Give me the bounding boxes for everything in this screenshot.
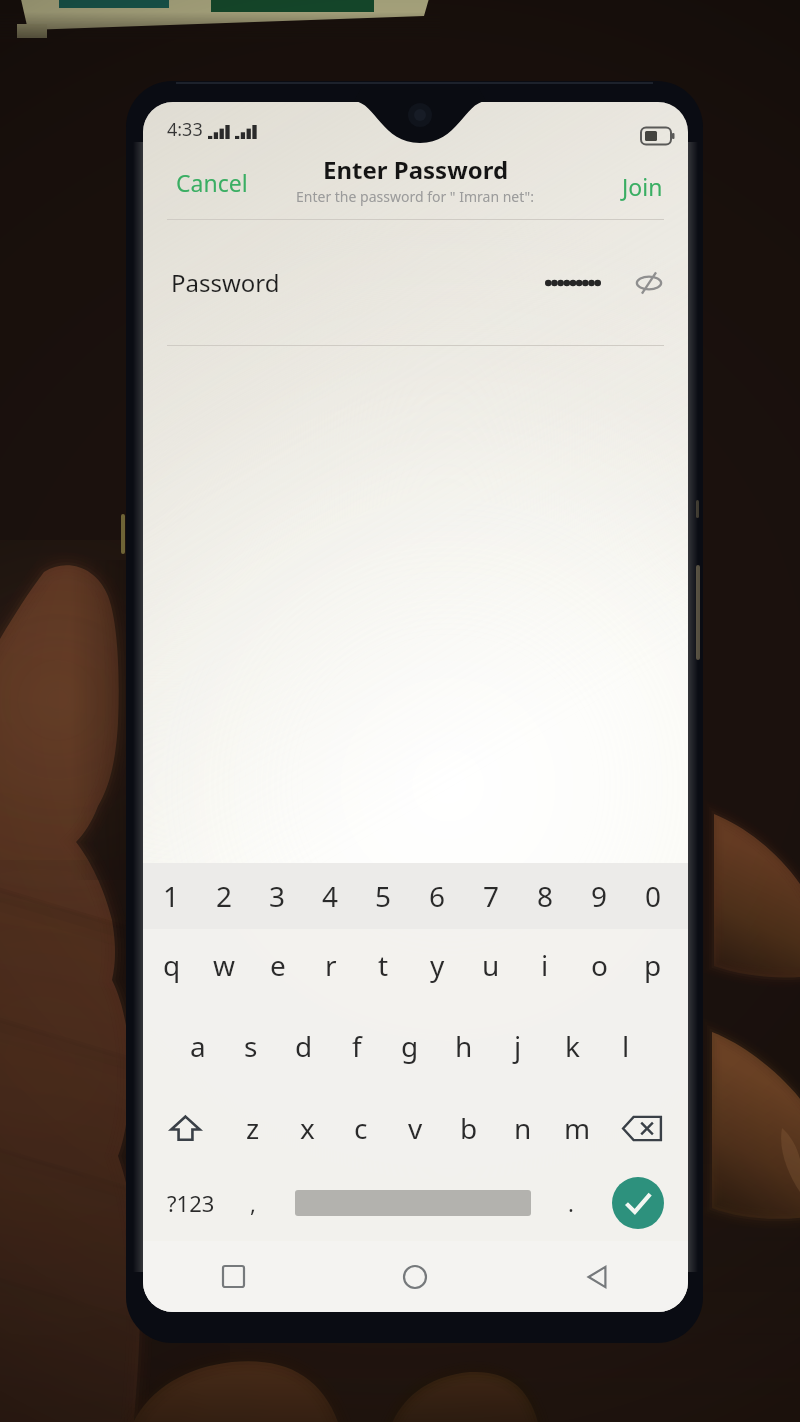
button[interactable]: q: [145, 929, 198, 1001]
button[interactable]: Recents: [143, 1241, 324, 1312]
button[interactable]: ?123: [158, 1165, 224, 1241]
staticText: e: [270, 946, 286, 984]
button[interactable]: s: [224, 1001, 277, 1091]
button[interactable]: v: [388, 1091, 442, 1165]
staticText: a: [190, 1027, 206, 1065]
button[interactable]: 2: [198, 863, 251, 929]
button[interactable]: l: [599, 1001, 653, 1091]
staticText: u: [482, 946, 500, 984]
button[interactable]: x: [280, 1091, 334, 1165]
button[interactable]: Home: [324, 1241, 506, 1312]
button[interactable]: b: [442, 1091, 496, 1165]
staticText: d: [295, 1027, 313, 1065]
staticText: o: [591, 946, 608, 984]
button[interactable]: Back: [506, 1241, 688, 1312]
button[interactable]: Show password: [631, 265, 667, 301]
staticText: Enter Password: [323, 153, 509, 186]
button[interactable]: Shift: [145, 1091, 225, 1165]
staticText: 5: [375, 877, 392, 915]
staticText: 4: [322, 877, 339, 915]
staticText: 9: [591, 877, 608, 915]
button[interactable]: h: [437, 1001, 491, 1091]
button[interactable]: Password: [143, 220, 688, 345]
button[interactable]: 7: [464, 863, 518, 929]
button[interactable]: 8: [518, 863, 572, 929]
button[interactable]: Enter: [612, 1177, 664, 1229]
staticText: 1: [163, 877, 180, 915]
button[interactable]: f: [330, 1001, 383, 1091]
staticText: r: [325, 946, 337, 984]
staticText: q: [163, 946, 181, 984]
button[interactable]: o: [572, 929, 626, 1001]
staticText: 6: [429, 877, 446, 915]
staticText: w: [213, 946, 236, 984]
staticText: b: [460, 1109, 478, 1147]
staticText: l: [622, 1027, 630, 1065]
staticText: 3: [269, 877, 286, 915]
button[interactable]: i: [518, 929, 572, 1001]
staticText: 2: [216, 877, 233, 915]
button[interactable]: z: [226, 1091, 280, 1165]
staticText: Password: [171, 266, 280, 299]
button[interactable]: g: [383, 1001, 437, 1091]
button[interactable]: t: [357, 929, 410, 1001]
staticText: v: [408, 1109, 423, 1147]
staticText: Cancel: [176, 167, 248, 198]
staticText: i: [541, 946, 549, 984]
staticText: 7: [483, 877, 500, 915]
button[interactable]: j: [491, 1001, 545, 1091]
button[interactable]: .: [545, 1165, 597, 1241]
button[interactable]: Space: [282, 1165, 544, 1241]
button[interactable]: 6: [410, 863, 464, 929]
staticText: n: [514, 1109, 532, 1147]
staticText: f: [352, 1027, 362, 1065]
staticText: c: [354, 1109, 368, 1147]
button[interactable]: 0: [626, 863, 680, 929]
button[interactable]: m: [550, 1091, 604, 1165]
button[interactable]: Cancel: [171, 164, 253, 201]
button[interactable]: r: [304, 929, 357, 1001]
button[interactable]: 3: [251, 863, 304, 929]
staticText: 8: [537, 877, 554, 915]
button[interactable]: 9: [572, 863, 626, 929]
button[interactable]: u: [464, 929, 518, 1001]
button[interactable]: 1: [145, 863, 198, 929]
staticText: Enter the password for " Imran net":: [296, 187, 535, 206]
button[interactable]: n: [496, 1091, 550, 1165]
staticText: Join: [622, 171, 663, 202]
button[interactable]: y: [410, 929, 464, 1001]
button[interactable]: p: [626, 929, 680, 1001]
staticText: 4:33: [167, 117, 203, 142]
button[interactable]: w: [198, 929, 251, 1001]
staticText: h: [455, 1027, 473, 1065]
staticText: ,: [250, 1188, 256, 1218]
button[interactable]: Join: [617, 168, 668, 205]
staticText: j: [514, 1027, 522, 1065]
button[interactable]: k: [545, 1001, 599, 1091]
button[interactable]: ,: [227, 1165, 279, 1241]
button[interactable]: d: [277, 1001, 330, 1091]
staticText: y: [430, 946, 445, 984]
button[interactable]: e: [251, 929, 304, 1001]
staticText: k: [565, 1027, 580, 1065]
staticText: g: [401, 1027, 419, 1065]
staticText: x: [300, 1109, 315, 1147]
button[interactable]: Backspace: [604, 1091, 680, 1165]
staticText: .: [568, 1188, 574, 1218]
staticText: s: [244, 1027, 258, 1065]
staticText: t: [378, 946, 389, 984]
staticText: z: [246, 1109, 260, 1147]
button[interactable]: 4: [304, 863, 357, 929]
staticText: 0: [645, 877, 662, 915]
button[interactable]: 5: [357, 863, 410, 929]
staticText: p: [644, 946, 662, 984]
button[interactable]: c: [334, 1091, 388, 1165]
button[interactable]: a: [171, 1001, 224, 1091]
staticText: ?123: [167, 1188, 215, 1218]
staticText: m: [564, 1109, 591, 1147]
